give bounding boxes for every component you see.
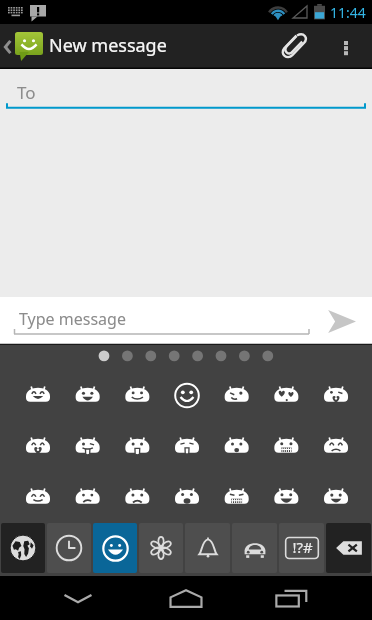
- button[interactable]: Send: [313, 297, 369, 345]
- button[interactable]: More options: [320, 24, 372, 69]
- staticText: !?#: [292, 537, 313, 557]
- button[interactable]: To: [0, 69, 372, 109]
- button[interactable]: Symbols: [279, 523, 324, 573]
- button[interactable]: Attach: [266, 24, 320, 69]
- button[interactable]: Back: [0, 32, 171, 61]
- button[interactable]: Recent apps: [256, 576, 328, 620]
- button[interactable]: Places: [232, 523, 277, 573]
- staticText: To: [17, 81, 36, 104]
- button[interactable]: Objects: [185, 523, 230, 573]
- button[interactable]: Delete: [326, 523, 371, 573]
- button[interactable]: Recent: [47, 523, 91, 573]
- other: Back: [3, 38, 12, 56]
- button[interactable]: Language: [1, 523, 45, 573]
- button[interactable]: Home: [150, 576, 222, 620]
- staticText: New message: [49, 33, 167, 58]
- staticText: 11:44: [330, 3, 366, 22]
- button[interactable]: Smileys: [93, 523, 137, 573]
- button[interactable]: Type message: [19, 308, 126, 330]
- button[interactable]: Hide keyboard: [42, 576, 114, 620]
- button[interactable]: Nature: [139, 523, 183, 573]
